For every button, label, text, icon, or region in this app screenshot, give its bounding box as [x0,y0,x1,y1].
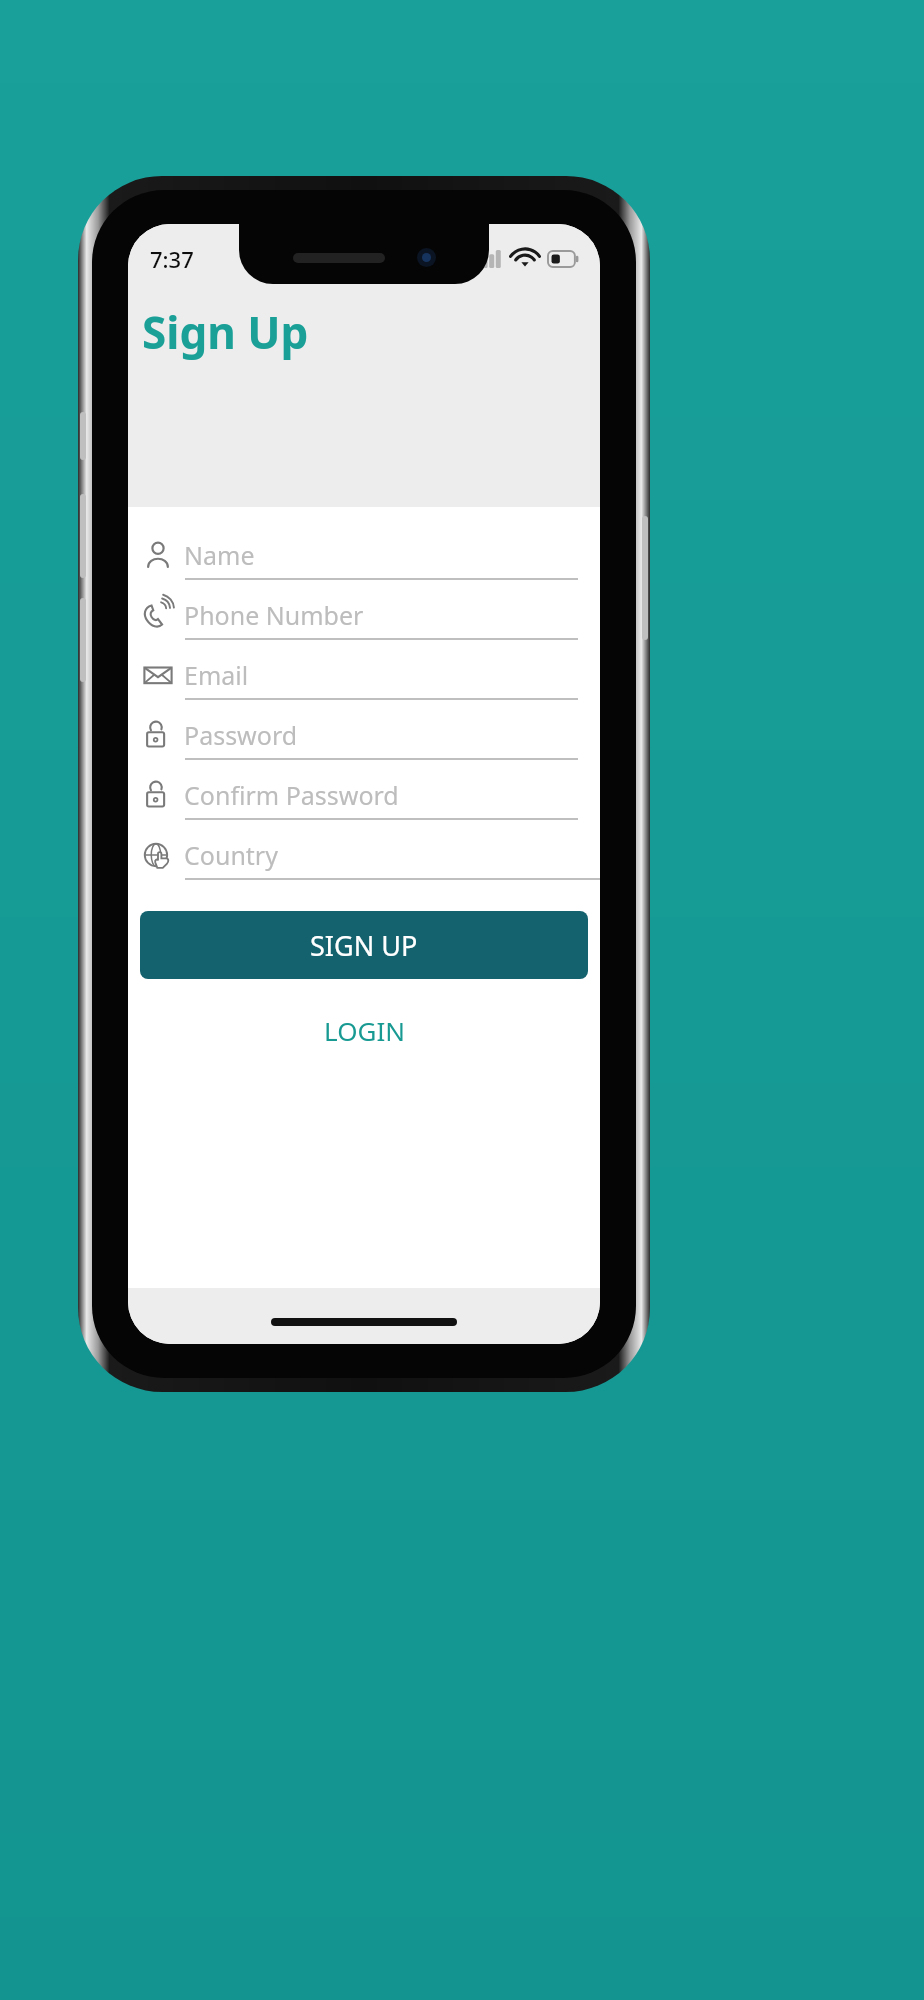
button[interactable]: Name [128,532,600,592]
staticText: Sign Up [142,302,309,362]
staticText: Country [184,838,278,872]
button[interactable]: Confirm Password [128,772,600,832]
staticText: Password [184,718,298,752]
button[interactable]: Phone Number [128,592,600,652]
staticText: 7:37 [150,244,194,274]
button[interactable]: Password [128,712,600,772]
button[interactable]: SIGN UP [140,911,588,979]
staticText: Confirm Password [184,778,399,812]
staticText: Email [184,658,249,692]
button[interactable]: Country [128,832,600,892]
staticText: LOGIN [324,1013,405,1048]
button[interactable]: LOGIN [298,1001,431,1060]
staticText: SIGN UP [310,927,418,964]
staticText: Phone Number [184,598,364,632]
staticText: Name [184,538,255,572]
button[interactable]: Email [128,652,600,712]
